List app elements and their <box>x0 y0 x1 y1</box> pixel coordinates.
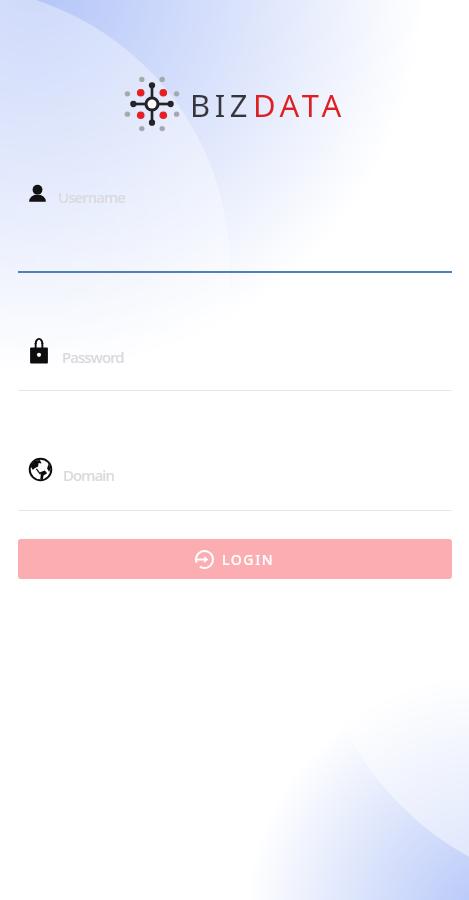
staticText: BIZ <box>190 84 253 124</box>
staticText: DATA <box>253 84 346 124</box>
staticText: Domain <box>63 465 114 485</box>
staticText: Username <box>58 187 125 207</box>
button[interactable]: LOGIN <box>18 539 452 579</box>
button[interactable] <box>18 334 452 380</box>
button[interactable] <box>18 172 452 222</box>
staticText: Password <box>62 347 124 367</box>
staticText: LOGIN <box>222 550 275 569</box>
button[interactable] <box>18 452 452 498</box>
